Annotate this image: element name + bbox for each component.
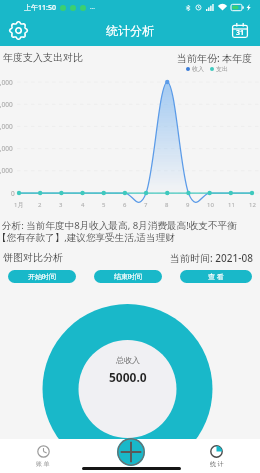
staticText: 4,000 <box>0 100 13 109</box>
staticText: 饼图对比分析 <box>3 251 63 264</box>
staticText: 31 <box>236 28 245 38</box>
staticText: 【您有存款了】,建议您享受生活,适当理财 <box>0 231 175 244</box>
staticText: 9 <box>186 201 190 209</box>
staticText: 0 <box>11 189 15 198</box>
staticText: 5 <box>102 201 106 209</box>
button[interactable]: Add <box>117 438 145 466</box>
staticText: 8 <box>165 201 169 209</box>
staticText: 7 <box>144 201 148 209</box>
button[interactable]: 查 看 <box>180 270 252 283</box>
staticText: 5000.0 <box>109 369 147 385</box>
button[interactable]: 统 计 <box>173 439 260 473</box>
staticText: 10 <box>207 201 214 209</box>
staticText: 查 看 <box>208 272 224 282</box>
staticText: 5,000 <box>0 78 13 87</box>
button[interactable]: 账 单 <box>0 439 86 473</box>
staticText: 12 <box>249 201 256 209</box>
staticText: 上午11:50 <box>24 3 56 13</box>
staticText: ··· <box>90 4 95 12</box>
staticText: 4 <box>81 201 85 209</box>
staticText: 6 <box>123 201 127 209</box>
button[interactable]: 结束时间 <box>94 270 162 283</box>
staticText: 统 计 <box>210 460 224 468</box>
button[interactable]: Calendar <box>228 18 252 42</box>
staticText: 年度支入支出对比 <box>3 51 83 64</box>
staticText: 3 <box>59 201 63 209</box>
staticText: 账 单 <box>36 460 50 468</box>
button[interactable]: Settings <box>6 18 30 42</box>
staticText: 当前时间: 2021-08 <box>170 251 253 265</box>
staticText: 分析: 当前年度中8月收入最高, 8月消费最高!收支不平衡 <box>2 219 237 232</box>
staticText: 11 <box>228 201 235 209</box>
staticText: 收入 <box>192 65 204 73</box>
staticText: 2 <box>38 201 42 209</box>
staticText: 统计分析 <box>106 23 154 38</box>
staticText: 2,000 <box>0 144 13 153</box>
staticText: 当前年份: 本年度 <box>177 51 253 65</box>
staticText: 1月 <box>14 201 24 209</box>
staticText: 总收入 <box>116 355 140 365</box>
staticText: 支出 <box>216 65 228 73</box>
button[interactable]: 开始时间 <box>8 270 76 283</box>
staticText: 结束时间 <box>114 272 142 281</box>
staticText: 开始时间 <box>28 272 56 281</box>
staticText: 1,000 <box>0 166 13 175</box>
staticText: 3,000 <box>0 122 13 131</box>
